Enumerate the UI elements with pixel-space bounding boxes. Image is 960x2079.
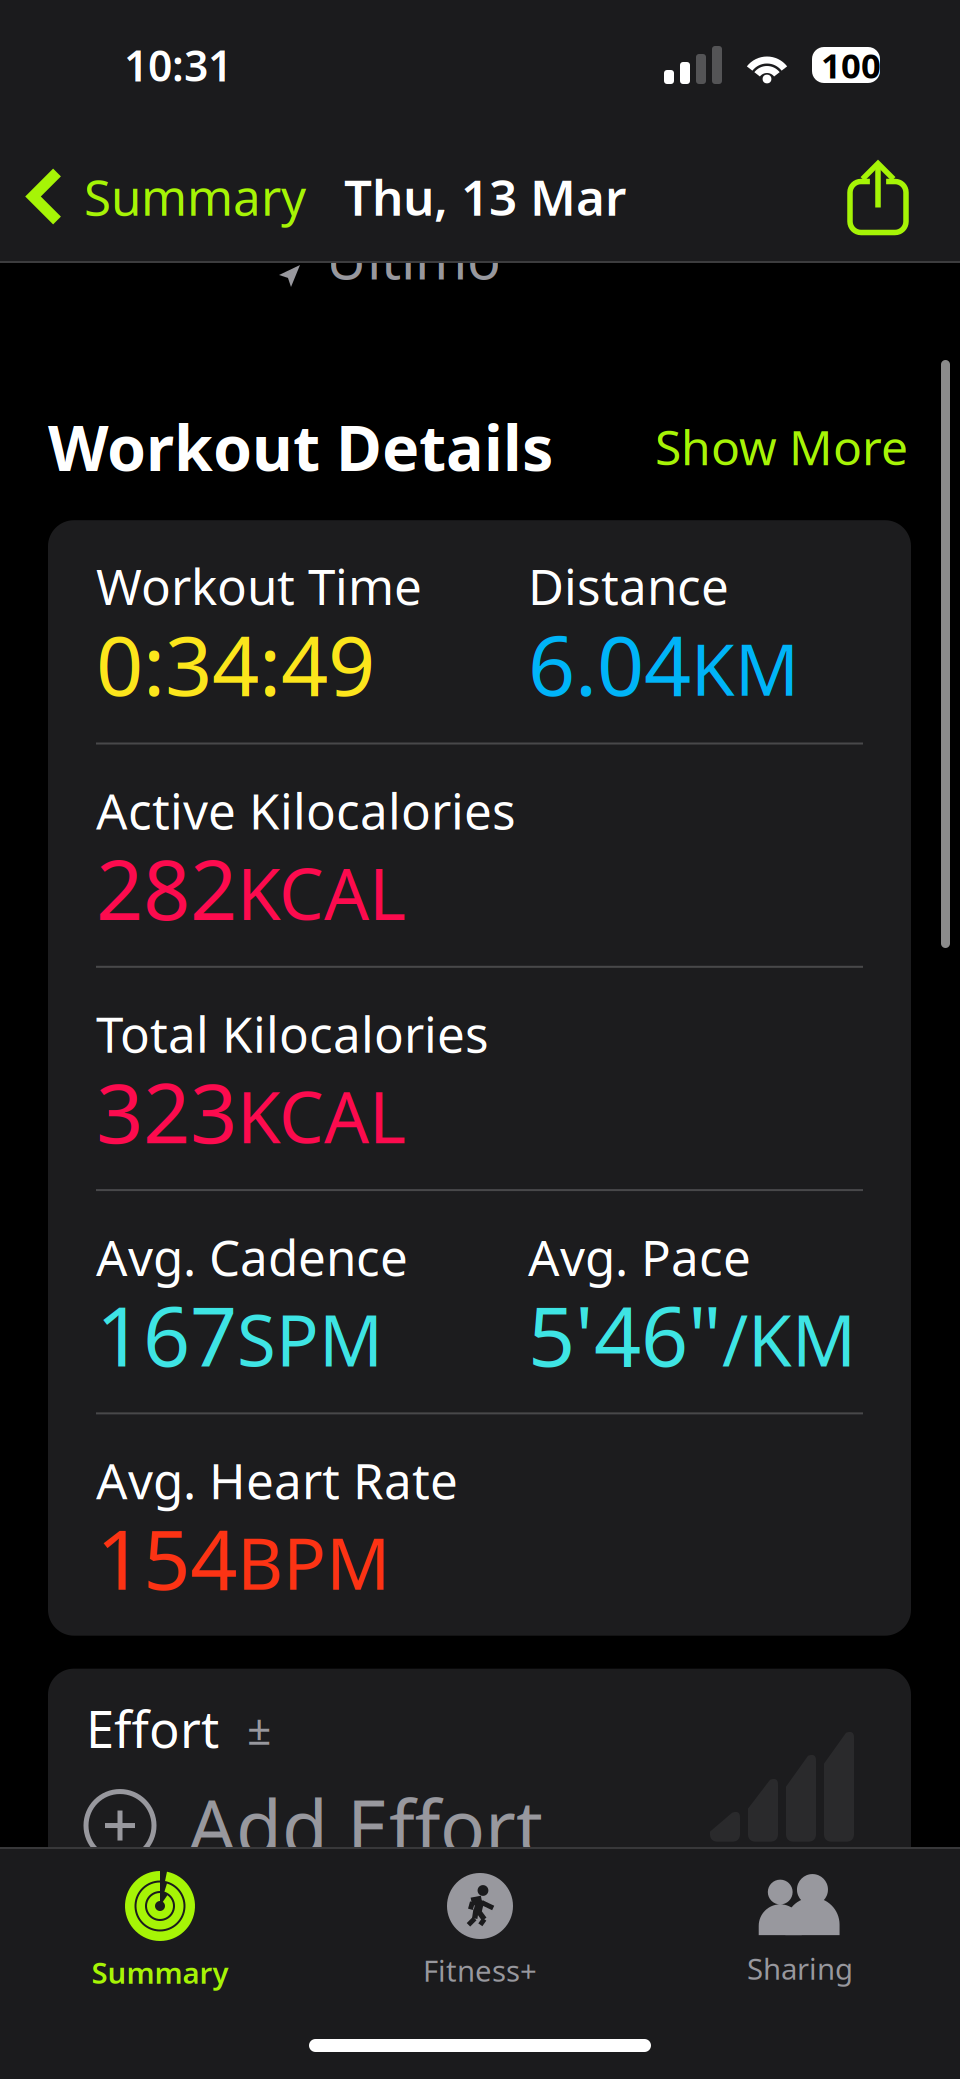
button[interactable]: Summary xyxy=(0,130,312,263)
staticText: KCAL xyxy=(237,846,406,939)
staticText: /KM xyxy=(722,1292,856,1386)
staticText: Avg. Pace xyxy=(528,1224,751,1290)
staticText: Thu, 13 Mar xyxy=(344,164,626,229)
button[interactable]: Sharing xyxy=(640,1853,960,2002)
staticText: 167 xyxy=(96,1280,237,1389)
staticText: Fitness+ xyxy=(423,1951,537,1990)
staticText: 0:34:49 xyxy=(96,609,375,718)
staticText: Total Kilocalories xyxy=(96,1001,489,1066)
staticText: Workout Details xyxy=(48,405,553,488)
staticText: Distance xyxy=(528,553,729,619)
button[interactable]: Fitness+ xyxy=(320,1851,640,2004)
staticText: 154 xyxy=(96,1503,237,1613)
staticText: ± xyxy=(247,1700,271,1757)
staticText: Summary xyxy=(84,164,306,229)
staticText: 6.04 xyxy=(528,609,691,718)
staticText: KCAL xyxy=(237,1069,406,1163)
staticText: Effort xyxy=(86,1695,219,1762)
staticText: 5'46" xyxy=(528,1280,722,1389)
staticText: Add Effort xyxy=(188,1776,543,1875)
staticText: Ultimo xyxy=(326,221,501,295)
button[interactable]: Share xyxy=(818,130,960,263)
staticText: KM xyxy=(691,621,799,715)
staticText: 100 xyxy=(821,42,881,88)
staticText: 323 xyxy=(96,1056,237,1166)
staticText: Workout Time xyxy=(96,553,422,619)
staticText: Avg. Cadence xyxy=(96,1224,408,1290)
staticText: Avg. Heart Rate xyxy=(96,1447,458,1513)
staticText: Summary xyxy=(91,1953,228,1992)
staticText: 10:31 xyxy=(124,37,232,93)
staticText: Sharing xyxy=(747,1949,853,1988)
staticText: Active Kilocalories xyxy=(96,777,516,843)
staticText: Show More xyxy=(655,415,908,478)
button[interactable]: Show More xyxy=(655,415,908,478)
staticText: SPM xyxy=(237,1292,383,1386)
button[interactable]: Summary xyxy=(0,1849,320,2006)
staticText: 282 xyxy=(96,833,237,943)
staticText: BPM xyxy=(237,1515,390,1609)
